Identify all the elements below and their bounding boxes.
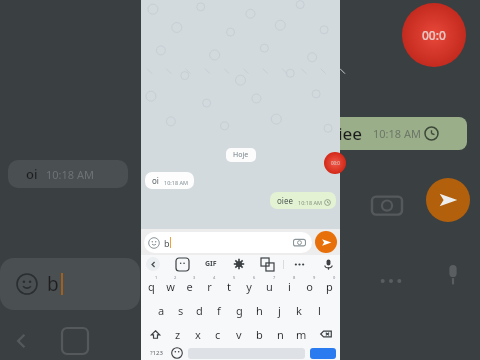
staticText: a — [158, 303, 165, 318]
staticText: 10:18 AM — [298, 199, 322, 206]
button[interactable]: Settings — [233, 258, 245, 270]
staticText: oi — [26, 165, 38, 183]
staticText: 10:18 AM — [164, 179, 188, 186]
staticText: u — [266, 279, 273, 294]
button[interactable]: l — [309, 298, 329, 322]
staticText: 0 — [333, 275, 336, 280]
staticText: t — [227, 279, 231, 294]
staticText: c — [215, 327, 221, 342]
button[interactable]: Translate — [261, 258, 274, 271]
button[interactable]: 2 — [161, 273, 180, 298]
button[interactable]: s — [171, 298, 190, 322]
button[interactable]: j — [269, 298, 289, 322]
staticText: ?123 — [150, 349, 163, 357]
button[interactable]: Shift — [142, 322, 168, 346]
staticText: b — [47, 271, 59, 297]
button[interactable]: b — [249, 322, 270, 346]
button[interactable]: 8 — [279, 273, 299, 298]
staticText: o — [306, 279, 313, 294]
staticText: s — [178, 303, 184, 318]
staticText: f — [217, 303, 221, 318]
button[interactable]: x — [188, 322, 208, 346]
staticText: p — [326, 279, 333, 294]
button[interactable]: 6 — [239, 273, 259, 298]
staticText: b — [256, 327, 263, 342]
button[interactable]: Emoji — [148, 237, 160, 249]
button[interactable]: Emoji — [144, 232, 312, 253]
button[interactable]: n — [270, 322, 291, 346]
button[interactable]: 9 — [299, 273, 319, 298]
button[interactable]: m — [291, 322, 312, 346]
staticText: z — [175, 327, 181, 342]
staticText: iee — [338, 122, 363, 145]
button[interactable]: Emoji keyboard — [171, 347, 183, 359]
staticText: n — [277, 327, 284, 342]
button[interactable]: z — [168, 322, 188, 346]
button[interactable]: f — [209, 298, 229, 322]
button[interactable]: Voice input — [322, 258, 335, 271]
button[interactable]: c — [208, 322, 228, 346]
staticText: d — [196, 303, 203, 318]
button[interactable]: k — [289, 298, 309, 322]
staticText: oi — [152, 175, 159, 186]
button[interactable]: 0 — [319, 273, 339, 298]
staticText: 00:0 — [331, 160, 340, 166]
staticText: 10:18 AM — [373, 126, 421, 141]
staticText: 1 — [155, 275, 158, 280]
button[interactable]: d — [190, 298, 209, 322]
button[interactable]: Back — [146, 257, 160, 271]
staticText: 8 — [293, 275, 296, 280]
staticText: w — [166, 279, 175, 294]
staticText: y — [246, 279, 252, 294]
staticText: v — [236, 327, 242, 342]
button[interactable]: g — [229, 298, 249, 322]
button[interactable]: 7 — [259, 273, 279, 298]
staticText: 10:18 AM — [46, 167, 94, 182]
staticText: k — [296, 303, 302, 318]
staticText: r — [207, 279, 212, 294]
staticText: 5 — [233, 275, 236, 280]
button[interactable]: ?123 — [145, 346, 167, 360]
button[interactable]: h — [249, 298, 269, 322]
button[interactable]: GIF — [205, 259, 217, 269]
button[interactable]: Camera — [293, 236, 306, 249]
staticText: 2 — [174, 275, 177, 280]
staticText: oiee — [277, 195, 293, 206]
button[interactable]: 4 — [199, 273, 219, 298]
staticText: l — [318, 303, 321, 318]
staticText: 3 — [193, 275, 196, 280]
staticText: GIF — [205, 259, 217, 269]
staticText: b — [164, 237, 170, 249]
staticText: i — [288, 279, 291, 294]
staticText: h — [256, 303, 263, 318]
button[interactable]: Backspace — [312, 322, 339, 346]
staticText: j — [278, 303, 281, 318]
button[interactable]: 5 — [219, 273, 239, 298]
staticText: x — [195, 327, 201, 342]
staticText: 00:0 — [422, 27, 446, 43]
staticText: 9 — [313, 275, 316, 280]
staticText: g — [236, 303, 243, 318]
button[interactable]: 1 — [142, 273, 161, 298]
staticText: 7 — [273, 275, 276, 280]
button[interactable]: a — [152, 298, 171, 322]
staticText: q — [148, 279, 155, 294]
staticText: e — [186, 279, 193, 294]
button[interactable]: v — [228, 322, 249, 346]
staticText: 6 — [253, 275, 256, 280]
button[interactable]: More — [293, 258, 306, 271]
button[interactable]: Send — [315, 231, 337, 253]
button[interactable]: Enter — [310, 348, 336, 359]
staticText: Hoje — [233, 150, 249, 160]
staticText: m — [296, 327, 307, 342]
staticText: 4 — [213, 275, 216, 280]
button[interactable]: Stickers — [176, 258, 189, 271]
button[interactable]: 3 — [180, 273, 199, 298]
